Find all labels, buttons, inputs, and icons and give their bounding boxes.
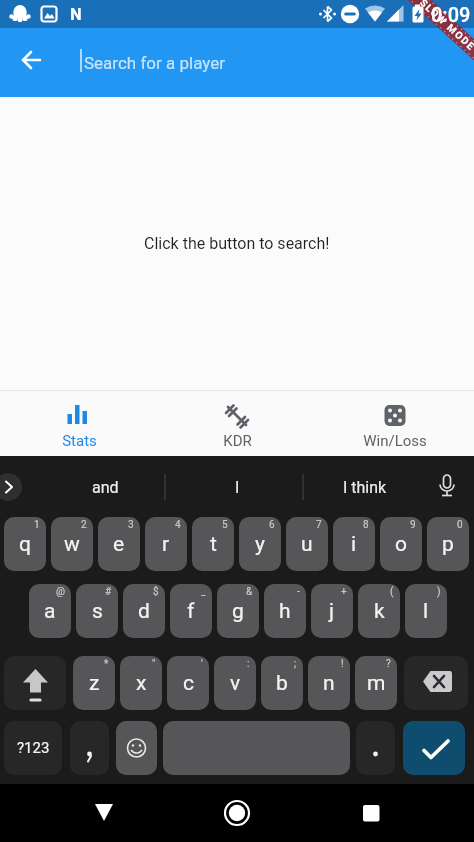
staticText: I bbox=[235, 478, 240, 497]
button[interactable] bbox=[404, 656, 468, 710]
staticText: c bbox=[183, 671, 194, 696]
staticText: ?123 bbox=[17, 739, 50, 757]
staticText: n bbox=[323, 671, 335, 696]
staticText: o bbox=[395, 532, 407, 557]
staticText: # bbox=[105, 586, 112, 598]
staticText: ! bbox=[341, 658, 344, 670]
staticText: x bbox=[136, 671, 147, 696]
button[interactable] bbox=[316, 390, 474, 456]
staticText: q bbox=[19, 532, 31, 557]
staticText: Win/Loss bbox=[363, 432, 427, 450]
staticText: ; bbox=[294, 658, 297, 670]
button[interactable]: @ bbox=[29, 584, 71, 638]
button[interactable]: 9 bbox=[380, 517, 422, 571]
staticText: 4 bbox=[175, 519, 181, 531]
staticText: 6 bbox=[269, 519, 275, 531]
button[interactable]: 5 bbox=[192, 517, 234, 571]
button[interactable]: ! bbox=[308, 656, 350, 710]
button[interactable]: - bbox=[264, 584, 306, 638]
button[interactable]: + bbox=[311, 584, 353, 638]
button[interactable] bbox=[12, 42, 52, 82]
staticText: 9 bbox=[410, 519, 416, 531]
button[interactable] bbox=[70, 721, 109, 775]
staticText: + bbox=[341, 586, 347, 598]
button[interactable]: 7 bbox=[286, 517, 328, 571]
staticText: s bbox=[92, 599, 103, 624]
staticText: v bbox=[230, 671, 241, 696]
staticText: 5 bbox=[222, 519, 228, 531]
staticText: a bbox=[44, 599, 56, 624]
staticText: y bbox=[255, 532, 265, 557]
staticText: and bbox=[92, 478, 119, 497]
button[interactable]: 3 bbox=[98, 517, 140, 571]
staticText: m bbox=[367, 671, 386, 696]
button[interactable]: ( bbox=[358, 584, 400, 638]
staticText: Click the button to search! bbox=[144, 234, 330, 253]
staticText: k bbox=[374, 599, 385, 624]
button[interactable]: I think bbox=[320, 464, 410, 510]
button[interactable]: ? bbox=[355, 656, 397, 710]
staticText: Search for a player bbox=[84, 53, 225, 73]
button[interactable] bbox=[0, 473, 22, 501]
staticText: ( bbox=[390, 586, 394, 598]
staticText: : bbox=[247, 658, 250, 670]
staticText: t bbox=[210, 532, 217, 557]
button[interactable]: 0 bbox=[427, 517, 469, 571]
button[interactable]: # bbox=[76, 584, 118, 638]
staticText: w bbox=[64, 532, 80, 557]
button[interactable]: ?123 bbox=[4, 721, 62, 775]
button[interactable]: Search for a player bbox=[84, 28, 404, 97]
staticText: d bbox=[138, 599, 150, 624]
staticText: l bbox=[423, 599, 429, 624]
button[interactable] bbox=[80, 786, 128, 840]
staticText: 0 bbox=[457, 519, 463, 531]
button[interactable]: 8 bbox=[333, 517, 375, 571]
staticText: I think bbox=[343, 478, 387, 497]
button[interactable]: ' bbox=[167, 656, 209, 710]
staticText: 2 bbox=[81, 519, 87, 531]
staticText: ? bbox=[386, 658, 391, 670]
button[interactable]: 6 bbox=[239, 517, 281, 571]
button[interactable]: $ bbox=[123, 584, 165, 638]
staticText: g bbox=[232, 599, 244, 624]
staticText: 7 bbox=[316, 519, 322, 531]
staticText: f bbox=[187, 599, 195, 624]
staticText: @ bbox=[56, 586, 65, 598]
button[interactable]: 1 bbox=[4, 517, 46, 571]
staticText: 3 bbox=[128, 519, 134, 531]
staticText: u bbox=[301, 532, 313, 557]
button[interactable] bbox=[347, 786, 395, 840]
button[interactable] bbox=[4, 656, 66, 710]
button[interactable]: ; bbox=[261, 656, 303, 710]
staticText: 1 bbox=[34, 519, 40, 531]
staticText: KDR bbox=[223, 432, 252, 450]
button[interactable] bbox=[163, 721, 350, 775]
staticText: 0:09 bbox=[431, 3, 471, 26]
staticText: " bbox=[152, 658, 156, 670]
staticText: SLOW MODE bbox=[417, 0, 474, 54]
button[interactable] bbox=[213, 786, 261, 840]
staticText: b bbox=[276, 671, 288, 696]
button[interactable] bbox=[158, 390, 316, 456]
button[interactable]: : bbox=[214, 656, 256, 710]
staticText: $ bbox=[153, 586, 159, 598]
staticText: _ bbox=[201, 586, 206, 598]
staticText: 8 bbox=[363, 519, 369, 531]
button[interactable]: " bbox=[120, 656, 162, 710]
staticText: ' bbox=[201, 658, 203, 670]
button[interactable]: 4 bbox=[145, 517, 187, 571]
button[interactable]: I bbox=[192, 464, 282, 510]
staticText: e bbox=[113, 532, 125, 557]
staticText: N bbox=[70, 5, 82, 24]
button[interactable]: 2 bbox=[51, 517, 93, 571]
button[interactable]: * bbox=[73, 656, 115, 710]
staticText: j bbox=[329, 599, 335, 624]
button[interactable]: & bbox=[217, 584, 259, 638]
button[interactable]: _ bbox=[170, 584, 212, 638]
button[interactable] bbox=[0, 390, 158, 456]
button[interactable] bbox=[116, 721, 157, 775]
button[interactable] bbox=[356, 721, 395, 775]
button[interactable]: ) bbox=[405, 584, 447, 638]
button[interactable] bbox=[403, 721, 465, 775]
button[interactable]: and bbox=[60, 464, 150, 510]
